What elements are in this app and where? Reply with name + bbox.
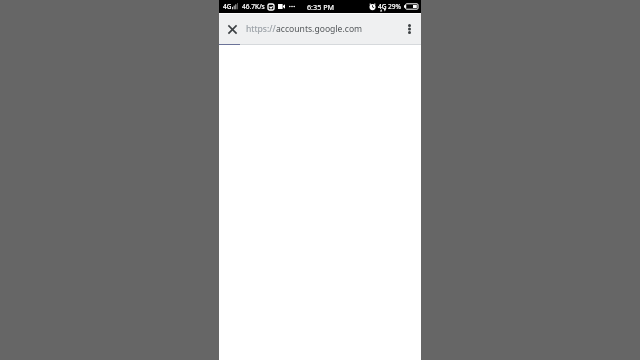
staticText: 4G — [223, 2, 232, 11]
staticText: accounts.google.com — [276, 23, 363, 35]
staticText: 29% — [388, 2, 402, 11]
button[interactable]: More options — [397, 13, 421, 45]
staticText: 4G — [378, 2, 387, 11]
button[interactable]: Close — [219, 13, 246, 45]
staticText: https:// — [246, 23, 276, 35]
button[interactable]: https:// — [246, 13, 397, 45]
staticText: 6:35 PM — [307, 2, 334, 12]
staticText: 46.7K/s — [242, 2, 265, 11]
